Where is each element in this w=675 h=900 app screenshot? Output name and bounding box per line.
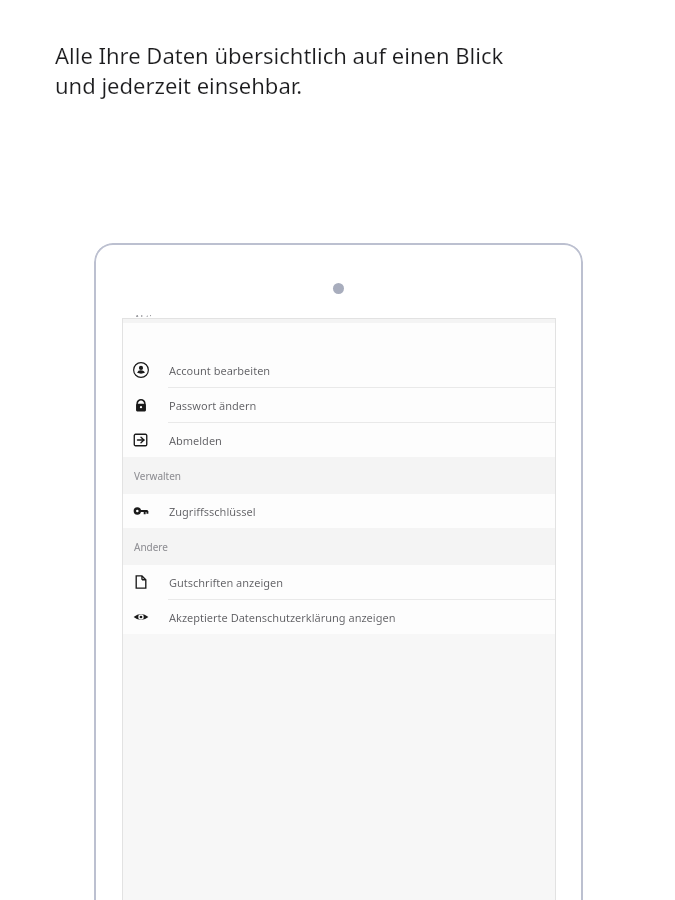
staticText: Alle Ihre Daten übersichtlich auf einen … bbox=[55, 40, 504, 70]
staticText: Akzeptierte Datenschutzerklärung anzeige… bbox=[169, 610, 396, 625]
staticText: Verwalten bbox=[134, 469, 182, 483]
staticText: und jederzeit einsehbar. bbox=[55, 70, 303, 100]
staticText: Andere bbox=[134, 540, 168, 554]
staticText: Gutschriften anzeigen bbox=[169, 575, 284, 590]
staticText: Abmelden bbox=[169, 433, 222, 448]
staticText: Aktionen bbox=[134, 312, 176, 317]
button[interactable]: Gutschriften anzeigen bbox=[122, 565, 556, 599]
button[interactable]: Abmelden bbox=[122, 423, 556, 457]
staticText: Account bearbeiten bbox=[169, 363, 271, 378]
button[interactable]: Akzeptierte Datenschutzerklärung anzeige… bbox=[122, 600, 556, 634]
button[interactable]: Zugriffsschlüssel bbox=[122, 494, 556, 528]
staticText: Zugriffsschlüssel bbox=[169, 504, 256, 519]
staticText: Passwort ändern bbox=[169, 398, 257, 413]
button[interactable]: Account bearbeiten bbox=[122, 353, 556, 387]
button[interactable]: Passwort ändern bbox=[122, 388, 556, 422]
